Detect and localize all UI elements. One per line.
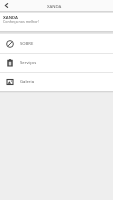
staticText: XANDA	[47, 3, 62, 9]
staticText: Galeria	[20, 79, 34, 85]
staticText: Conheça nos melhor!	[3, 19, 39, 24]
button[interactable]: Serviços	[0, 54, 113, 72]
button[interactable]: Galeria	[0, 73, 113, 91]
staticText: Serviços	[20, 60, 37, 66]
button[interactable]: SOBRE	[0, 34, 113, 53]
staticText: XANDA	[3, 15, 18, 21]
button[interactable]: Back	[0, 0, 12, 11]
staticText: SOBRE	[20, 41, 34, 47]
